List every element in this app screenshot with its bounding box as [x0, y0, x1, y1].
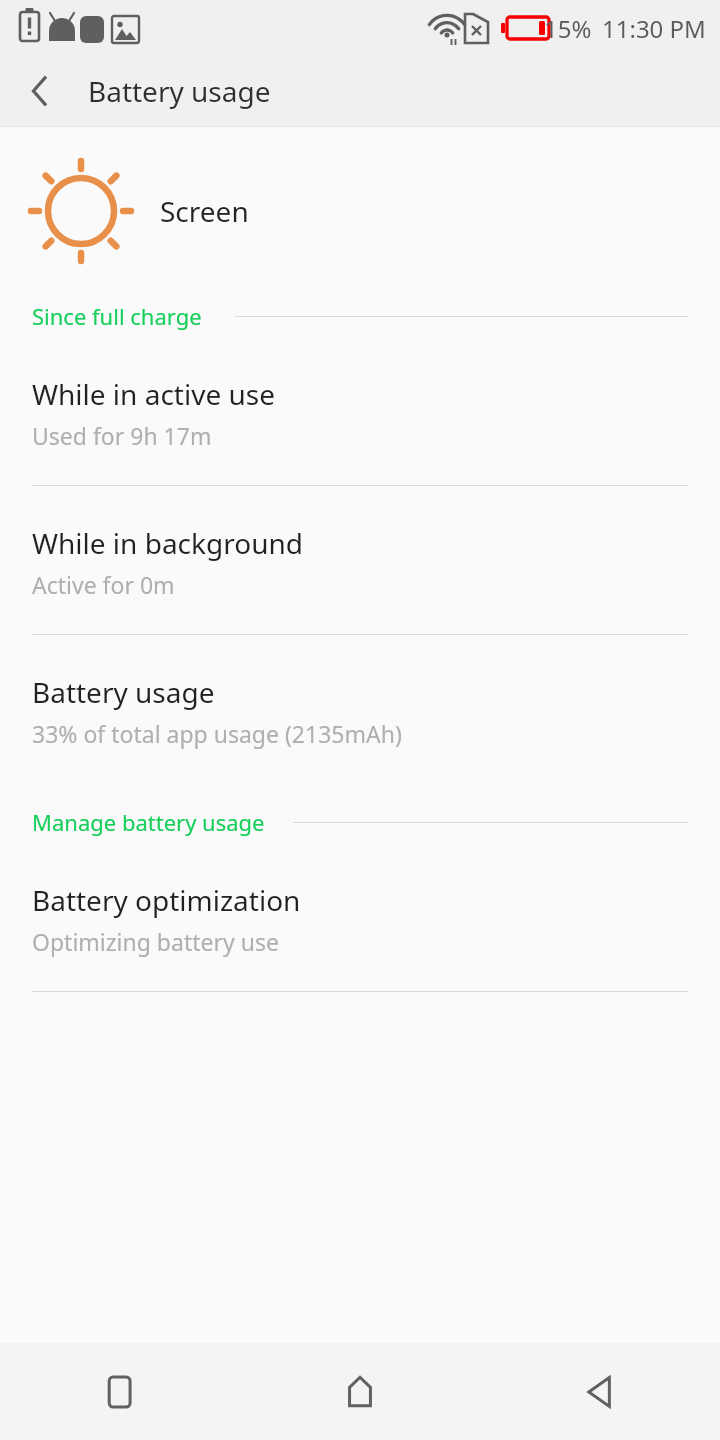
button[interactable]: Home [240, 1343, 480, 1440]
staticText: Battery usage [88, 72, 271, 110]
staticText: Active for 0m [32, 569, 175, 600]
button[interactable]: Recents [0, 1343, 240, 1440]
staticText: Battery optimization [32, 881, 301, 919]
staticText: While in background [32, 524, 303, 562]
staticText: Since full charge [32, 301, 202, 331]
button[interactable]: Since full charge [0, 301, 720, 331]
button[interactable]: While in background [0, 524, 720, 673]
staticText: Optimizing battery use [32, 926, 279, 957]
staticText: Manage battery usage [32, 807, 265, 837]
button[interactable]: Battery optimization [0, 881, 720, 1030]
staticText: 33% of total app usage (2135mAh) [32, 718, 402, 749]
staticText: While in active use [32, 375, 275, 413]
staticText: Used for 9h 17m [32, 420, 212, 451]
button[interactable]: Manage battery usage [0, 807, 720, 837]
staticText: Battery usage [32, 673, 215, 711]
staticText: 11:30 PM [602, 12, 706, 45]
staticText: 15% [544, 12, 592, 45]
button[interactable]: Back [12, 62, 70, 120]
button[interactable]: Back [480, 1343, 720, 1440]
staticText: Screen [160, 192, 249, 230]
button[interactable]: While in active use [0, 375, 720, 524]
button[interactable]: Battery usage [0, 673, 720, 783]
